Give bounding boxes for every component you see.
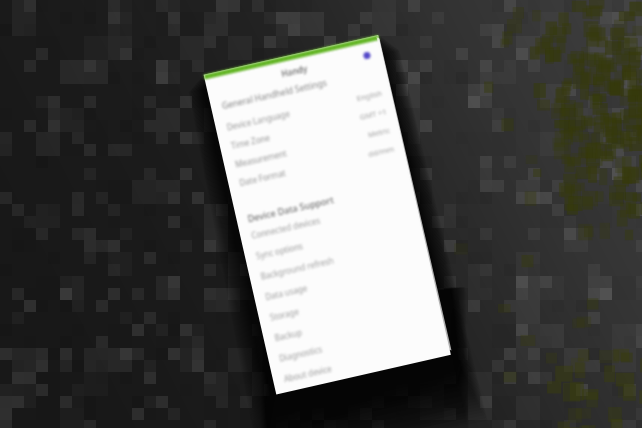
staticText: Background refresh <box>260 254 335 282</box>
staticText: dd/mm <box>367 143 396 159</box>
staticText: Metric <box>367 125 391 140</box>
staticText: English <box>356 88 383 103</box>
staticText: GMT +1 <box>359 106 387 122</box>
staticText: Diagnostics <box>278 343 323 364</box>
button[interactable]: Handy <box>205 40 384 102</box>
button[interactable]: Account <box>360 49 372 61</box>
staticText: Backup <box>273 326 303 343</box>
button[interactable]: Diagnostics <box>266 311 445 371</box>
button[interactable]: Background refresh <box>248 229 427 289</box>
button[interactable]: About device <box>271 331 450 391</box>
staticText: Data usage <box>264 282 309 302</box>
button[interactable]: Connected devices <box>238 188 418 248</box>
staticText: Time Zone <box>230 132 271 151</box>
staticText: Device Language <box>226 107 291 133</box>
staticText: Connected devices <box>250 214 322 241</box>
button[interactable]: Device Language <box>214 81 393 139</box>
button[interactable]: Storage <box>257 270 436 330</box>
staticText: Date Format <box>238 167 287 188</box>
staticText: Storage <box>269 305 301 323</box>
staticText: Handy <box>280 63 309 80</box>
staticText: About device <box>283 363 333 384</box>
button[interactable]: Sync options <box>243 209 422 269</box>
button[interactable]: Backup <box>262 290 441 351</box>
staticText: General Handheld Settings <box>221 77 329 112</box>
button[interactable]: Measurement <box>222 118 401 176</box>
staticText: Measurement <box>234 147 288 170</box>
staticText: Sync options <box>255 240 304 261</box>
button[interactable]: Time Zone <box>218 99 397 158</box>
button[interactable]: Data usage <box>252 249 432 310</box>
staticText: Device Data Support <box>246 193 335 224</box>
button[interactable]: Date Format <box>227 136 405 195</box>
